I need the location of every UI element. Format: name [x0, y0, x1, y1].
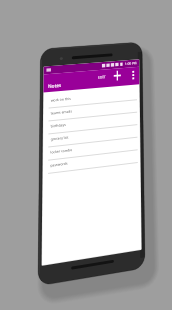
button[interactable]: Notes app on phone [0, 0, 172, 310]
